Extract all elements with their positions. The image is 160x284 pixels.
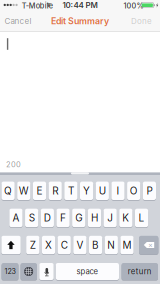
button[interactable]: I [111, 182, 125, 201]
button[interactable]: S [25, 209, 38, 228]
staticText: return [128, 267, 152, 276]
staticText: V [76, 239, 83, 251]
button[interactable]: Done [112, 10, 158, 32]
button[interactable]: F [56, 209, 70, 228]
staticText: Y [83, 185, 90, 197]
button[interactable]: J [103, 209, 117, 228]
button[interactable]: G [72, 209, 85, 228]
button[interactable]: P [143, 182, 156, 201]
button[interactable]: Shift [1, 236, 21, 255]
button[interactable]: X [42, 236, 55, 255]
button[interactable]: V [73, 236, 86, 255]
button[interactable]: Q [1, 182, 15, 201]
staticText: N [107, 239, 115, 251]
staticText: C [61, 239, 68, 251]
staticText: A [12, 212, 19, 224]
button[interactable]: 123 [1, 263, 18, 281]
button[interactable]: Dictate [39, 263, 54, 281]
staticText: S [29, 212, 35, 224]
staticText: 100% [124, 1, 144, 10]
staticText: 200 [6, 160, 21, 169]
staticText: J [107, 212, 113, 224]
staticText: F [60, 212, 66, 224]
button[interactable]: Y [80, 182, 93, 201]
button[interactable]: D [41, 209, 54, 228]
button[interactable]: B [89, 236, 102, 255]
staticText: R [52, 185, 58, 197]
button[interactable]: U [96, 182, 109, 201]
button[interactable]: T [64, 182, 77, 201]
staticText: × [148, 241, 153, 249]
staticText: space [76, 267, 98, 276]
button[interactable]: A [9, 209, 22, 228]
staticText: Cancel [4, 16, 31, 26]
button[interactable]: E [33, 182, 46, 201]
staticText: U [99, 185, 106, 197]
button[interactable]: N [105, 236, 118, 255]
button[interactable]: space [56, 263, 119, 281]
staticText: T-Mobile [22, 1, 53, 10]
button[interactable]: W [17, 182, 30, 201]
staticText: L [138, 212, 144, 224]
button[interactable]: M [120, 236, 134, 255]
staticText: 123 [4, 267, 15, 276]
staticText: Q [4, 185, 12, 197]
staticText: M [122, 239, 131, 251]
staticText: O [130, 185, 138, 197]
staticText: P [146, 185, 152, 197]
button[interactable]: Delete [139, 236, 158, 255]
button[interactable]: R [49, 182, 62, 201]
staticText: G [75, 212, 82, 224]
staticText: Z [30, 239, 36, 251]
staticText: E [36, 185, 42, 197]
button[interactable]: L [135, 209, 148, 228]
button[interactable]: Z [26, 236, 39, 255]
button[interactable]: Cancel [0, 10, 50, 32]
button[interactable]: C [58, 236, 71, 255]
button[interactable]: Switch keyboard [20, 263, 37, 281]
staticText: K [122, 212, 129, 224]
staticText: 10:44 PM [62, 0, 97, 10]
button[interactable]: K [119, 209, 132, 228]
staticText: H [91, 212, 98, 224]
staticText: D [44, 212, 51, 224]
staticText: W [19, 185, 29, 197]
staticText: Edit Summary [51, 16, 109, 26]
button[interactable]: O [127, 182, 140, 201]
staticText: X [45, 239, 52, 251]
staticText: I [116, 185, 119, 197]
button[interactable]: H [88, 209, 101, 228]
staticText: Done [131, 16, 152, 26]
staticText: B [92, 239, 99, 251]
button[interactable]: return [121, 263, 158, 281]
staticText: T [68, 185, 74, 197]
